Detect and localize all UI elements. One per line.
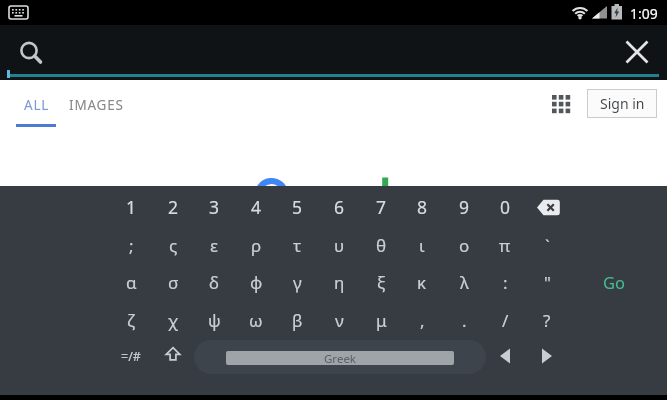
button[interactable]: η [319,264,359,300]
staticText: =/# [121,348,141,365]
button[interactable]: γ [277,264,317,300]
staticText: Sign in [600,94,645,113]
staticText: δ [209,271,219,294]
button[interactable]: 8 [402,189,442,225]
button[interactable]: ι [402,227,442,263]
button[interactable]: ν [319,302,359,338]
button[interactable]: ALL [18,95,56,115]
staticText: / [502,309,509,332]
button[interactable]: 6 [319,189,359,225]
button[interactable]: 2 [153,189,193,225]
button[interactable]: ? [527,302,567,338]
button[interactable]: ζ [111,302,151,338]
button[interactable]: ς [153,227,193,263]
staticText: IMAGES [69,96,124,114]
button[interactable]: . [444,302,484,338]
button[interactable]: β [277,302,317,338]
button[interactable]: 3 [194,189,234,225]
staticText: η [334,271,345,294]
button[interactable] [537,348,557,364]
staticText: θ [376,234,387,257]
button[interactable]: ο [444,227,484,263]
button[interactable] [495,348,515,364]
button[interactable]: δ [194,264,234,300]
button[interactable]: , [402,302,442,338]
button[interactable]: υ [319,227,359,263]
staticText: Greek [324,351,357,365]
button[interactable]: ξ [361,264,401,300]
button[interactable] [626,41,648,63]
staticText: 5 [292,195,303,219]
button[interactable]: 4 [236,189,276,225]
button[interactable]: μ [361,302,401,338]
button[interactable]: 9 [444,189,484,225]
staticText: 9 [459,195,470,219]
staticText: ζ [127,309,135,332]
staticText: υ [334,234,345,257]
button[interactable]: IMAGES [68,95,124,115]
button[interactable]: Go [589,264,639,300]
staticText: ρ [251,234,262,257]
staticText: 7 [376,195,387,219]
button[interactable]: σ [153,264,193,300]
staticText: β [292,309,303,332]
button[interactable] [537,199,560,216]
staticText: τ [293,234,302,257]
button[interactable]: : [485,264,525,300]
staticText: μ [376,309,387,332]
button[interactable]: 0 [485,189,525,225]
staticText: 2 [168,195,179,219]
staticText: ; [129,234,134,257]
button[interactable]: 1 [111,189,151,225]
button[interactable]: τ [277,227,317,263]
button[interactable] [165,347,181,361]
staticText: ν [335,309,344,332]
button[interactable]: ; [111,227,151,263]
button[interactable]: θ [361,227,401,263]
button[interactable]: =/# [111,338,151,374]
button[interactable]: Sign in [587,89,657,118]
button[interactable] [19,41,43,65]
staticText: ` [545,234,550,257]
staticText: ? [543,309,551,332]
staticText: ω [249,309,263,332]
button[interactable]: ψ [194,302,234,338]
staticText: , [420,309,425,332]
staticText: φ [250,271,263,294]
staticText: χ [168,309,179,332]
button[interactable]: " [527,264,567,300]
button[interactable]: 7 [361,189,401,225]
staticText: ο [459,234,470,257]
button[interactable]: φ [236,264,276,300]
staticText: Go [603,271,625,293]
staticText: π [499,234,511,257]
staticText: ξ [377,271,386,294]
staticText: . [462,309,467,332]
staticText: ς [169,234,178,257]
staticText: ι [419,234,425,257]
staticText: ALL [24,96,50,114]
staticText: 6 [334,195,345,219]
button[interactable] [552,95,570,113]
staticText: " [544,271,551,294]
staticText: α [126,271,137,294]
staticText: 1:09 [630,4,658,21]
button[interactable]: ε [194,227,234,263]
button[interactable]: ` [527,227,567,263]
staticText: 3 [209,195,220,219]
button[interactable]: 5 [277,189,317,225]
staticText: : [503,271,508,294]
button[interactable]: χ [153,302,193,338]
button[interactable]: ω [236,302,276,338]
button[interactable]: Greek [194,340,486,374]
staticText: 8 [417,195,428,219]
staticText: λ [460,271,469,294]
staticText: σ [168,271,179,294]
button[interactable]: λ [444,264,484,300]
button[interactable]: α [111,264,151,300]
button[interactable]: ρ [236,227,276,263]
button[interactable]: κ [402,264,442,300]
staticText: ε [210,234,218,257]
button[interactable]: / [485,302,525,338]
button[interactable]: π [485,227,525,263]
